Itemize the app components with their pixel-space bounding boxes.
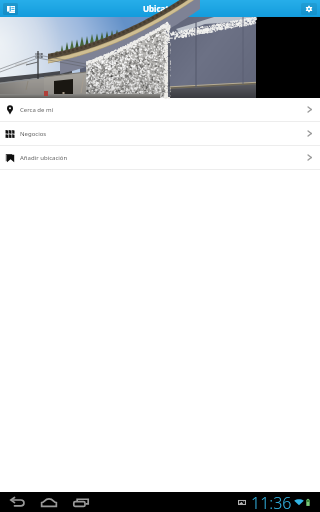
button[interactable]: Negocios (0, 122, 320, 145)
button[interactable]: Recent apps (68, 492, 94, 512)
staticText: Añadir ubicación (20, 154, 68, 162)
button[interactable]: Navigation menu (3, 3, 18, 15)
button[interactable]: Cerca de mí (0, 98, 320, 121)
button[interactable]: Settings (301, 3, 317, 15)
staticText: Negocios (20, 130, 47, 138)
button[interactable]: Back (4, 492, 30, 512)
button[interactable]: Añadir ubicación (0, 146, 320, 169)
button[interactable]: Home (36, 492, 62, 512)
staticText: Cerca de mí (20, 106, 54, 114)
staticText: 11:36 (251, 492, 292, 512)
staticText: Ubicator (143, 3, 178, 14)
